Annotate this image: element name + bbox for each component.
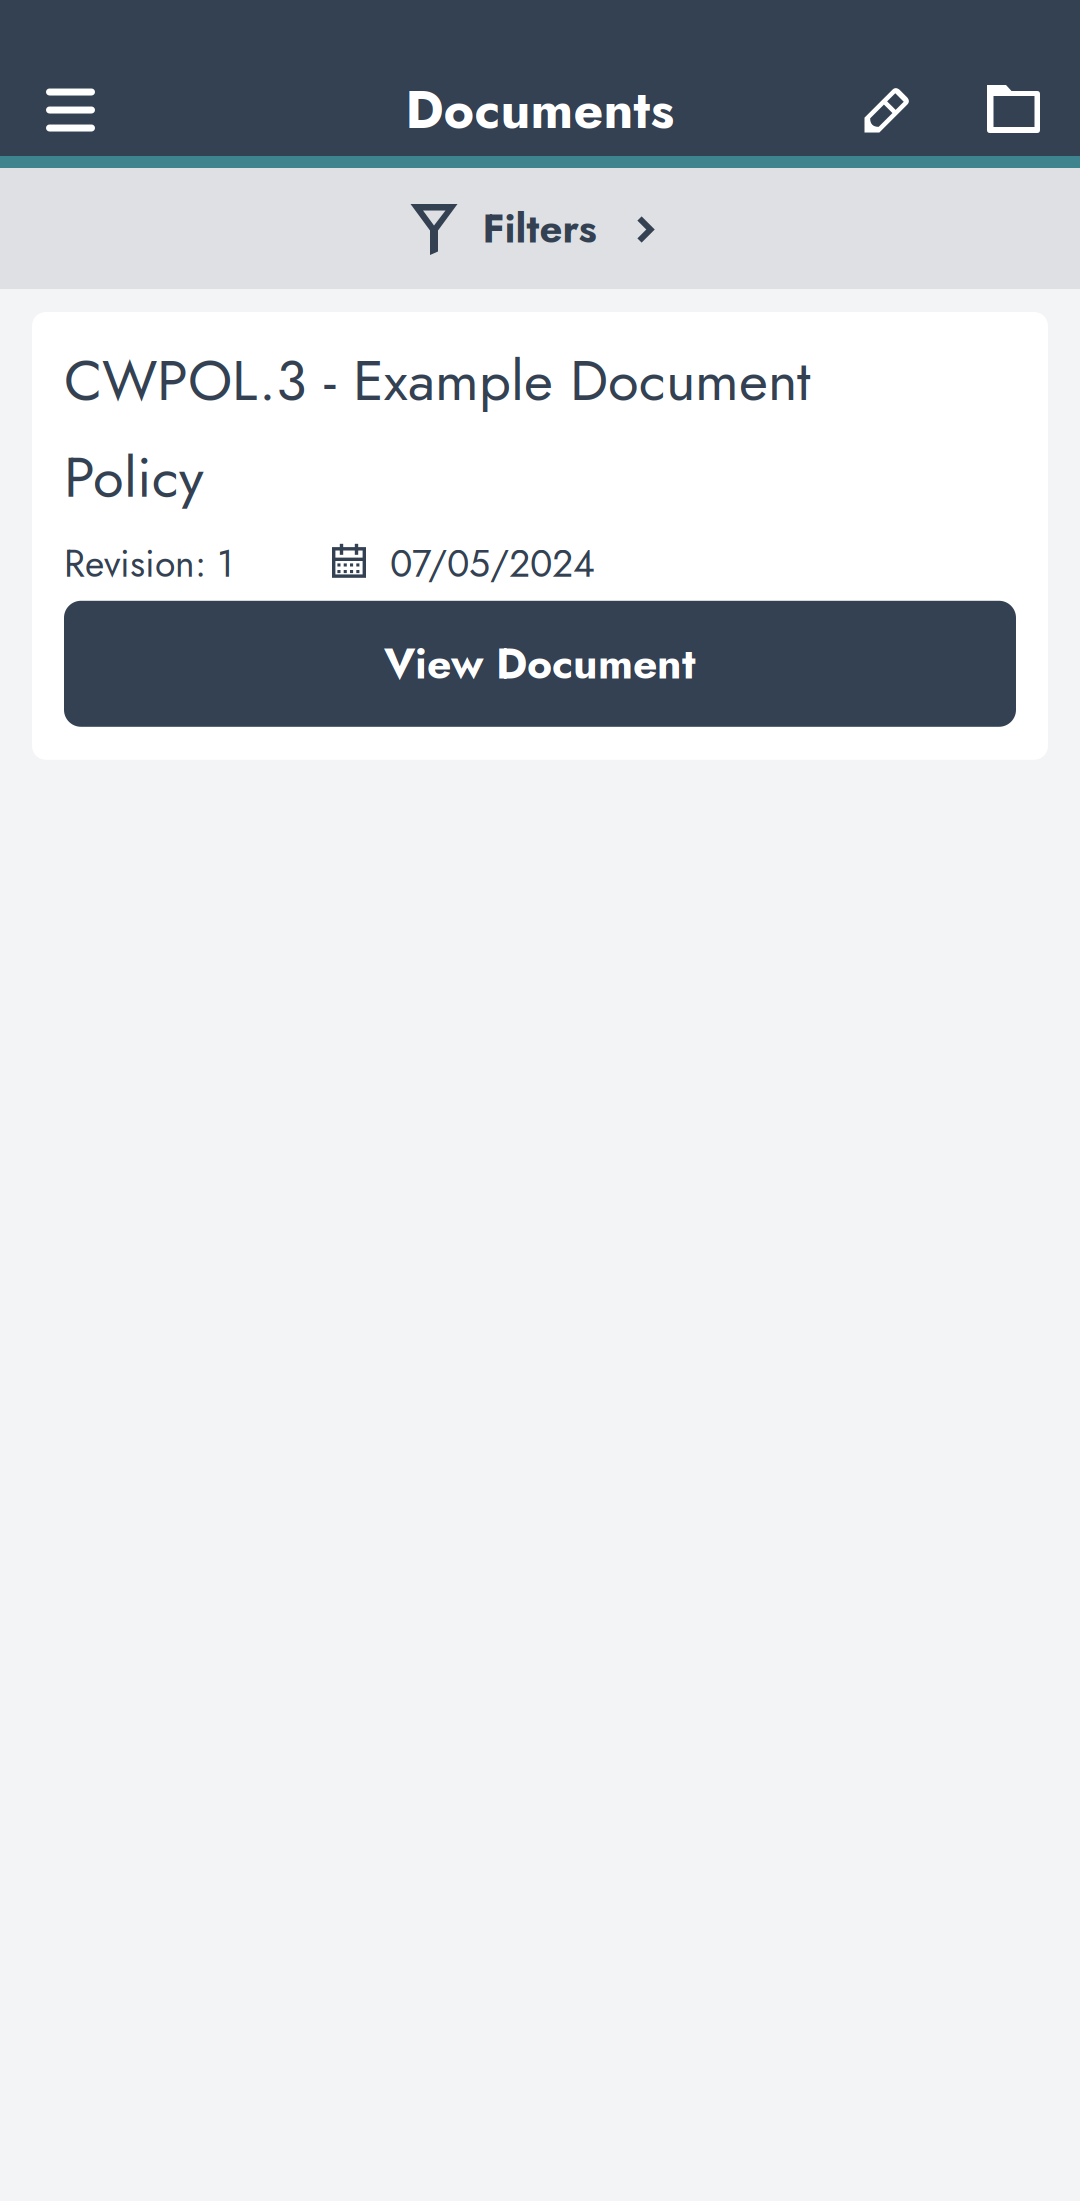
button[interactable]: Edit bbox=[840, 0, 934, 156]
staticText: View Document bbox=[384, 633, 696, 695]
staticText: Policy bbox=[64, 437, 204, 518]
staticText: 07/05/2024 bbox=[390, 537, 595, 591]
staticText: CWPOL.3 - Example Document bbox=[64, 340, 810, 421]
button[interactable]: Filters bbox=[0, 168, 1080, 289]
button[interactable]: View Document bbox=[64, 601, 1016, 727]
staticText: Documents bbox=[405, 72, 674, 147]
button[interactable]: Folders bbox=[967, 0, 1060, 156]
staticText: Revision: 1 bbox=[64, 537, 234, 591]
button[interactable]: Menu bbox=[0, 0, 141, 156]
staticText: Filters bbox=[482, 200, 596, 257]
